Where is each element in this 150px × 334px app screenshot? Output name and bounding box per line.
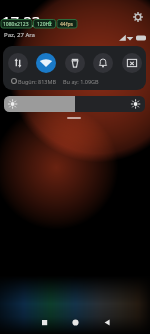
button[interactable]: Home [71,318,80,327]
staticText: 17:23 [2,11,41,31]
staticText: Bu ay: 1.09GB [63,78,99,85]
button[interactable]: Recents [40,318,49,327]
staticText: Bugün: 813MB [18,78,57,85]
button[interactable]: Mobile data [8,53,28,73]
button[interactable]: Brightness [4,96,145,112]
staticText: 1080x2123 [3,21,29,28]
staticText: Paz, 27 Ara [4,31,35,39]
button[interactable]: Flashlight [65,53,85,73]
button[interactable]: Screen record [122,53,142,73]
button[interactable]: Do not disturb [93,53,113,73]
button[interactable]: Wi-Fi [36,53,56,73]
button[interactable]: Back [103,318,112,327]
staticText: 120Hz [37,21,52,28]
staticText: 44fps [60,21,73,28]
button[interactable]: Settings [133,12,143,22]
